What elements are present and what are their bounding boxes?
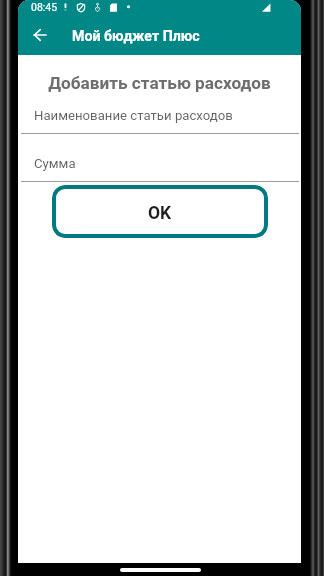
button[interactable]: OK (52, 185, 268, 238)
staticText: 08:45 (31, 1, 58, 13)
staticText: Сумма (34, 156, 76, 171)
staticText: OK (148, 203, 172, 224)
staticText: Наименование статьи расходов (34, 108, 233, 123)
staticText: Добавить статью расходов (18, 73, 301, 93)
button[interactable]: Back (18, 17, 60, 55)
staticText: Мой бюджет Плюс (72, 28, 200, 45)
button[interactable]: Наименование статьи расходов (21, 108, 299, 134)
button[interactable]: Сумма (21, 156, 299, 182)
